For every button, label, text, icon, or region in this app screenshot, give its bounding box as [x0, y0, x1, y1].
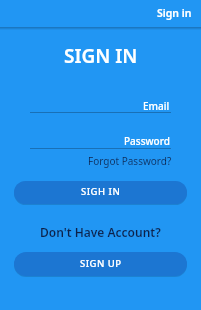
button[interactable]: Sign in [157, 6, 201, 20]
staticText: Don't Have Account? [40, 224, 161, 240]
button[interactable]: SIGH IN [14, 181, 187, 204]
staticText: Email [143, 99, 170, 113]
button[interactable]: Don't Have Account? [40, 224, 161, 240]
staticText: SIGH IN [81, 185, 121, 198]
staticText: Password [124, 134, 170, 148]
staticText: Sign in [157, 6, 192, 20]
staticText: SIGN IN [64, 43, 138, 69]
staticText: SIGN UP [80, 257, 122, 270]
staticText: Forgot Password? [88, 154, 172, 168]
button[interactable]: SIGN UP [14, 252, 187, 276]
button[interactable]: Forgot Password? [88, 154, 172, 168]
